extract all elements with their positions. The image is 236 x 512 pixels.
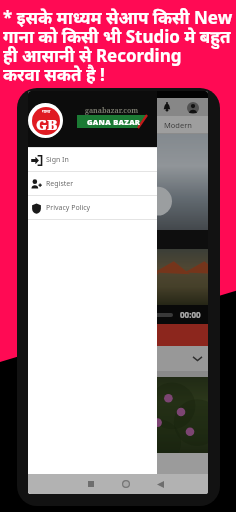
- staticText: Bhojpuri: [43, 120, 74, 130]
- button[interactable]: Notifications: [160, 100, 174, 114]
- staticText: 00:00: [180, 309, 201, 320]
- staticText: GANA BAZAR: [87, 117, 141, 127]
- staticText: GANA BAZAR: [35, 134, 58, 135]
- staticText: Register: [46, 179, 74, 189]
- staticText: ganabazar.com: [85, 106, 139, 116]
- button[interactable]: Modern: [148, 116, 208, 134]
- button[interactable]: Hindi: [88, 116, 148, 134]
- staticText: CLASSIC HITS: [33, 182, 102, 196]
- button[interactable]: Contact Us: [28, 453, 208, 474]
- button[interactable]: Bhojpuri: [28, 116, 88, 134]
- staticText: Hindi: [109, 120, 128, 130]
- staticText: गाना: [42, 108, 51, 115]
- button[interactable]: Recents: [85, 478, 97, 490]
- button[interactable]: Home: [120, 478, 132, 490]
- staticText: GB: [36, 115, 58, 134]
- staticText: Modern: [164, 120, 192, 130]
- button[interactable]: Privacy Policy: [28, 196, 157, 219]
- button[interactable]: Register: [28, 172, 157, 195]
- button[interactable]: Back: [154, 478, 166, 490]
- staticText: Privacy Policy: [46, 203, 91, 213]
- staticText: * इसके माध्यम सेआप किसी New गाना को किसी…: [3, 6, 235, 86]
- button[interactable]: Buy Now: [28, 324, 208, 346]
- button[interactable]: Profile: [185, 100, 200, 115]
- button[interactable]: Sign In: [28, 148, 157, 171]
- staticText: Sign In: [46, 155, 69, 165]
